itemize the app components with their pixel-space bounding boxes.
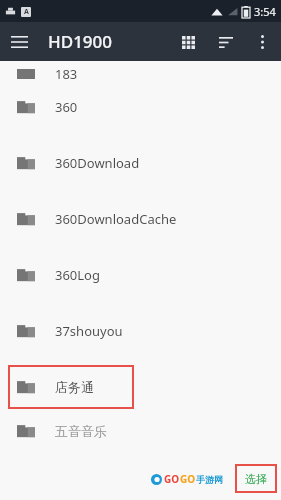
button[interactable]: 店务通	[8, 365, 134, 409]
staticText: 360Log	[55, 266, 100, 284]
button[interactable]: 五音音乐	[0, 415, 281, 441]
staticText: GO	[164, 472, 180, 486]
staticText: 选择	[245, 472, 267, 486]
staticText: 37shouyou	[55, 322, 123, 340]
staticText: 店务通	[55, 379, 94, 395]
button[interactable]: 360Download	[0, 135, 281, 191]
button[interactable]: 183	[0, 61, 281, 79]
button[interactable]: Sort	[207, 23, 245, 61]
staticText: 360	[55, 98, 78, 116]
button[interactable]: 37shouyou	[0, 303, 281, 359]
staticText: 183	[55, 65, 78, 83]
staticText: GO	[180, 472, 196, 486]
button[interactable]: 360Log	[0, 247, 281, 303]
staticText: A	[24, 7, 29, 17]
button[interactable]: 360	[0, 79, 281, 135]
button[interactable]: More options	[245, 25, 279, 59]
staticText: 360Download	[55, 154, 140, 172]
button[interactable]: 选择	[235, 464, 277, 493]
button[interactable]: Grid view	[169, 23, 207, 61]
staticText: HD1900	[48, 30, 113, 53]
button[interactable]: 360DownloadCache	[0, 191, 281, 247]
staticText: 360DownloadCache	[55, 210, 177, 228]
button[interactable]: Menu	[0, 22, 39, 61]
staticText: 3:54	[254, 4, 276, 19]
staticText: 手游网	[196, 474, 223, 485]
staticText: 五音音乐	[55, 423, 107, 439]
